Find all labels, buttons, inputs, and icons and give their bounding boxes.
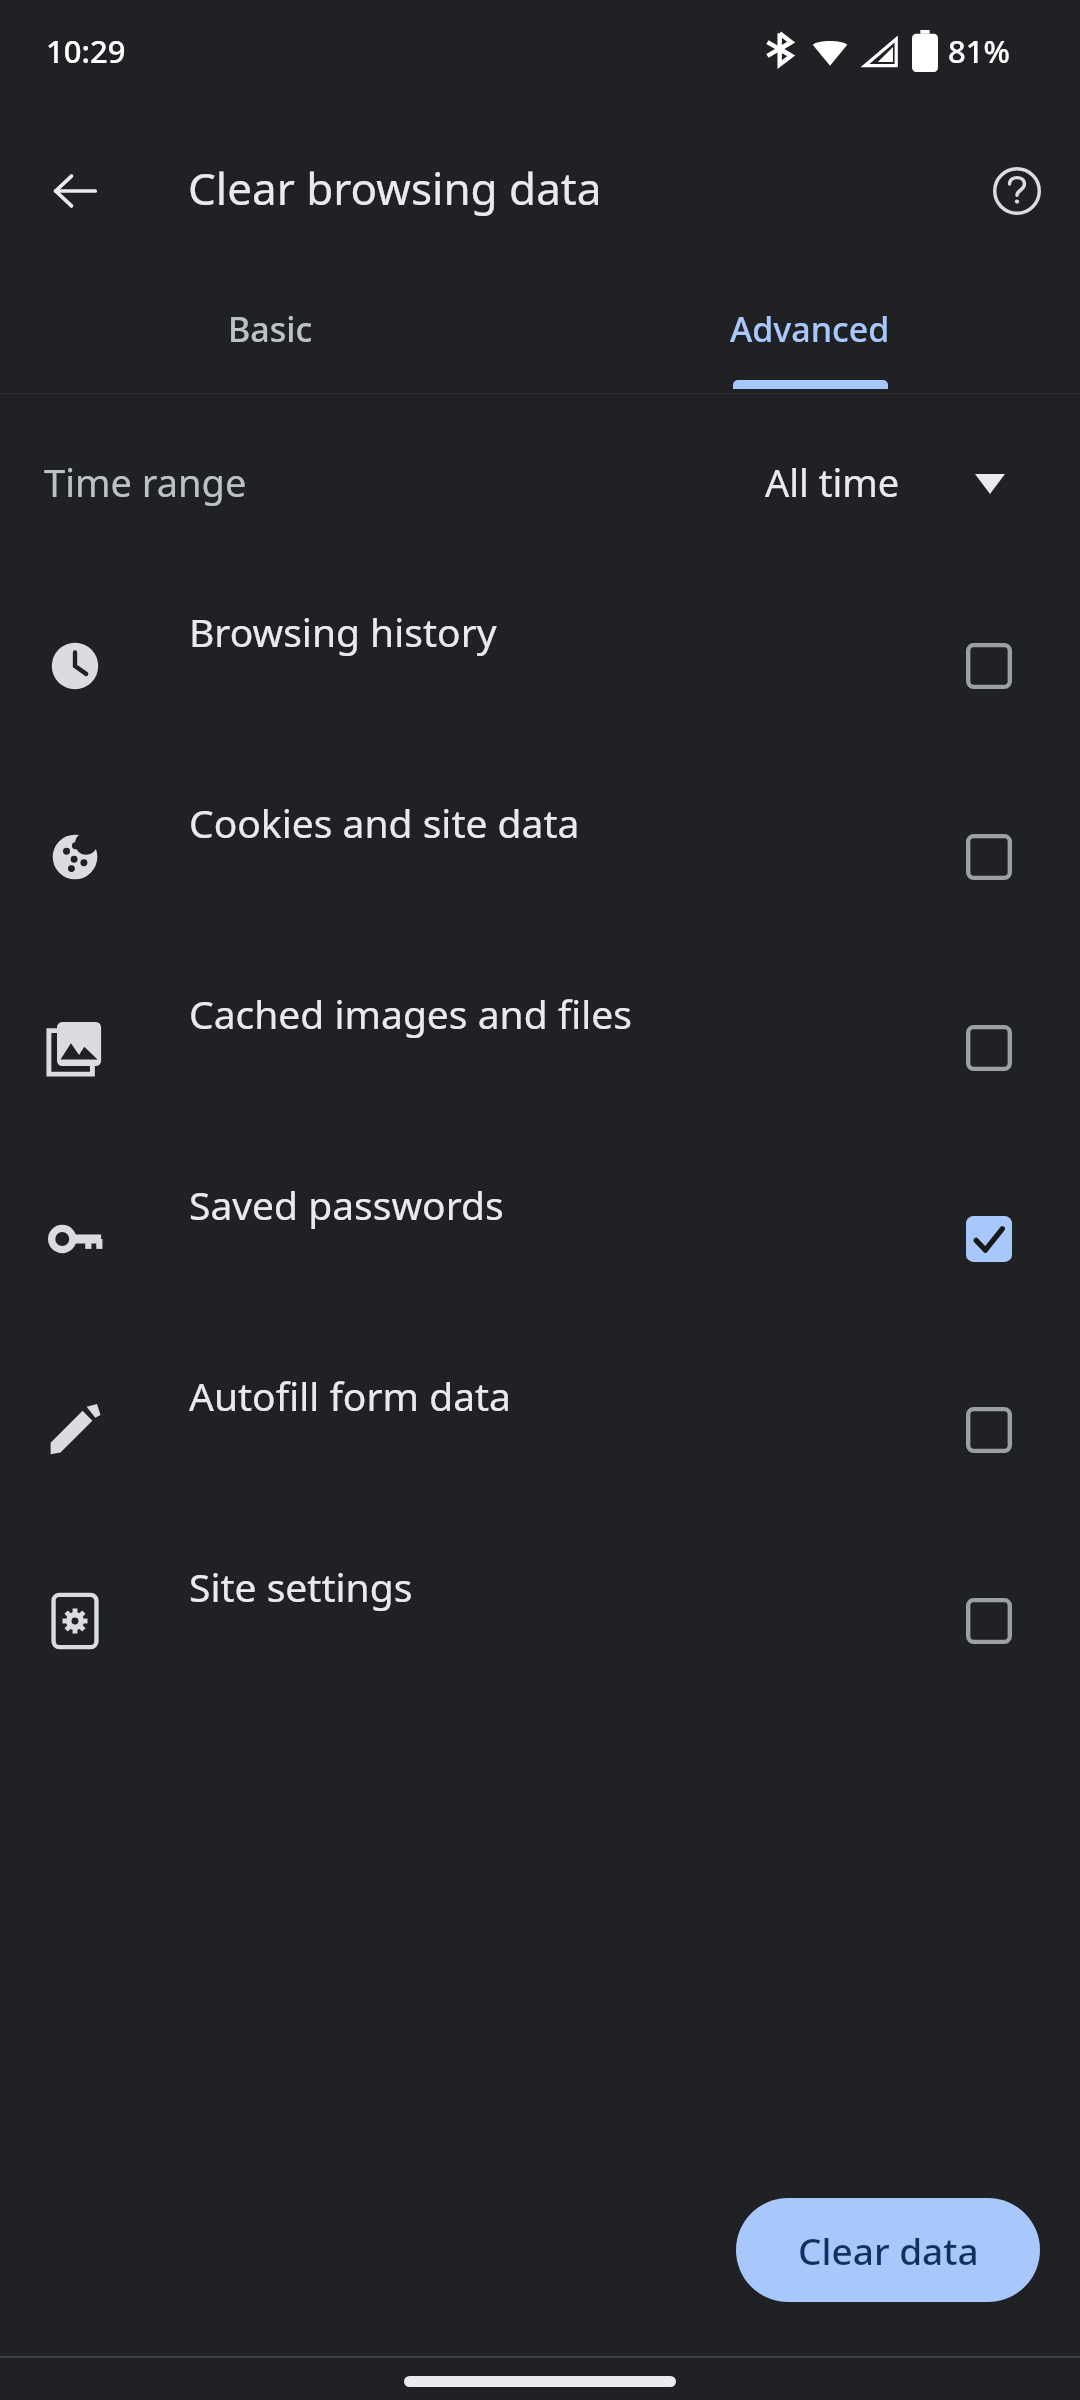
staticText: 81% bbox=[948, 30, 1010, 72]
button[interactable]: Time range bbox=[0, 394, 1080, 564]
staticText: Site settings bbox=[189, 1560, 413, 1613]
button[interactable]: Site settings bbox=[955, 1587, 1023, 1655]
button[interactable]: Saved passwords bbox=[955, 1205, 1023, 1273]
staticText: Clear data bbox=[798, 2225, 979, 2275]
staticText: Saved passwords bbox=[189, 1178, 504, 1231]
button[interactable]: Basic bbox=[0, 252, 540, 392]
staticText: Basic bbox=[228, 306, 313, 352]
staticText: Advanced bbox=[730, 306, 890, 352]
button[interactable]: Autofill form data bbox=[955, 1396, 1023, 1464]
button[interactable]: Browsing history bbox=[0, 565, 1080, 756]
staticText: Cached images and files bbox=[189, 987, 633, 1040]
staticText: Cookies and site data bbox=[189, 796, 580, 849]
button[interactable]: Cached images and files bbox=[955, 1014, 1023, 1082]
button[interactable]: Clear data bbox=[736, 2198, 1040, 2302]
staticText: All time bbox=[765, 456, 900, 508]
staticText: 10:29 bbox=[46, 30, 126, 72]
button[interactable]: Advanced bbox=[540, 252, 1080, 392]
button[interactable]: Help bbox=[972, 146, 1062, 236]
staticText: Clear browsing data bbox=[188, 158, 602, 218]
staticText: Browsing history bbox=[189, 605, 497, 658]
button[interactable]: Autofill form data bbox=[0, 1329, 1080, 1520]
button[interactable]: Browsing history bbox=[955, 632, 1023, 700]
button[interactable]: Saved passwords bbox=[0, 1138, 1080, 1329]
button[interactable]: Cookies and site data bbox=[955, 823, 1023, 891]
button[interactable]: Site settings bbox=[0, 1520, 1080, 1711]
button[interactable]: Back bbox=[30, 146, 120, 236]
staticText: Autofill form data bbox=[189, 1369, 511, 1422]
button[interactable]: Cached images and files bbox=[0, 947, 1080, 1138]
button[interactable]: Cookies and site data bbox=[0, 756, 1080, 947]
staticText: Time range bbox=[44, 456, 247, 508]
